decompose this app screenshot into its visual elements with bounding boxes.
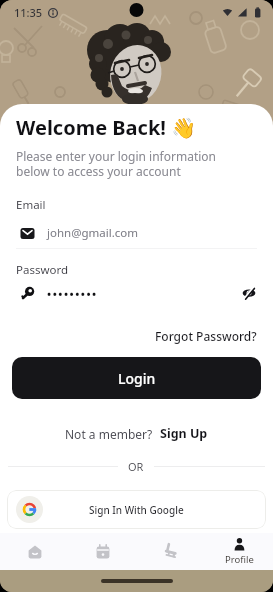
- button[interactable]: john@gmail.com: [16, 225, 257, 241]
- button[interactable]: [241, 285, 257, 301]
- button[interactable]: [0, 533, 69, 570]
- button[interactable]: [137, 533, 205, 570]
- staticText: Password: [16, 262, 69, 278]
- staticText: Sign In With Google: [89, 503, 184, 517]
- staticText: Login: [118, 369, 156, 388]
- staticText: Welcome Back! 👋: [16, 114, 197, 141]
- button[interactable]: [69, 533, 137, 570]
- staticText: 11:35: [14, 5, 43, 20]
- button[interactable]: Login: [12, 357, 261, 399]
- staticText: Profile: [225, 553, 254, 566]
- button[interactable]: Sign In With Google: [7, 490, 266, 529]
- staticText: Please enter your login information belo…: [16, 148, 217, 180]
- staticText: Email: [16, 197, 46, 213]
- staticText: OR: [128, 459, 144, 474]
- staticText: Not a member?: [65, 426, 153, 442]
- staticText: •••••••••: [47, 286, 98, 301]
- staticText: john@gmail.com: [47, 225, 138, 241]
- button[interactable]: Profile: [205, 533, 273, 570]
- button[interactable]: •••••••••: [16, 285, 257, 301]
- button[interactable]: Sign Up: [160, 425, 208, 442]
- button[interactable]: Forgot Password?: [155, 328, 257, 344]
